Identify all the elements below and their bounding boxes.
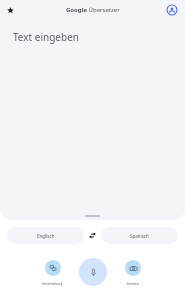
staticText: Kamera — [127, 282, 139, 286]
button[interactable]: Kamera — [92, 260, 173, 286]
button[interactable]: Unterhaltung — [12, 260, 93, 286]
staticText: Text eingeben — [13, 30, 79, 44]
button[interactable]: Swap languages — [84, 227, 101, 244]
staticText: Google Übersetzer — [66, 6, 120, 14]
button[interactable]: Account — [166, 4, 178, 16]
button[interactable]: Saved translations — [2, 2, 18, 18]
button[interactable]: Englisch — [7, 227, 84, 244]
button[interactable]: Speak — [79, 258, 107, 286]
staticText: Englisch — [37, 233, 55, 239]
staticText: Unterhaltung — [42, 282, 63, 286]
staticText: Spanisch — [130, 233, 149, 239]
button[interactable]: Spanisch — [101, 227, 178, 244]
